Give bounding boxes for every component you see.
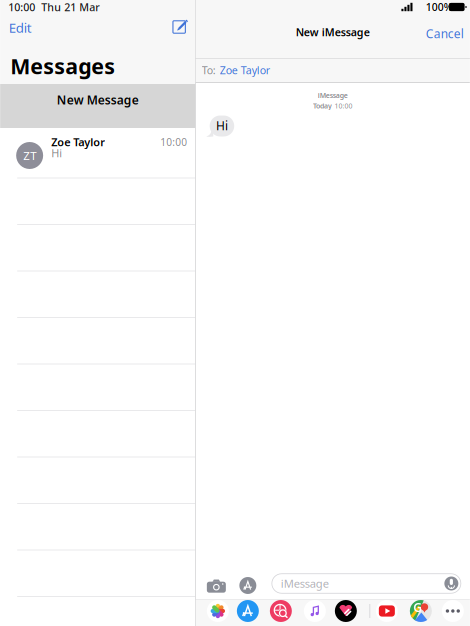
staticText: 10:00 [8,0,35,14]
button[interactable]: Camera [207,578,226,593]
button[interactable]: App Store [239,577,256,594]
staticText: Thu 21 Mar [41,0,100,14]
staticText: 10:00 [335,101,353,110]
button[interactable]: Maps [410,600,432,622]
button[interactable]: App Store [237,600,259,622]
staticText: New iMessage [296,25,370,39]
button[interactable]: New Message [167,10,196,39]
button[interactable]: Zoe Taylor [220,63,270,77]
button[interactable]: Music [304,600,326,622]
staticText: New Message [57,92,139,108]
staticText: G [413,599,422,615]
button[interactable]: ZT [0,128,195,178]
staticText: Edit [9,19,32,36]
button[interactable]: New Message [0,84,195,128]
button[interactable]: Edit [3,14,38,41]
staticText: 100% [426,0,453,14]
button[interactable]: YouTube [376,600,398,622]
button[interactable]: More [442,600,464,622]
button[interactable]: Images [270,600,292,622]
staticText: Zoe Taylor [51,135,105,149]
staticText: Cancel [426,25,464,41]
staticText: iMessage [281,576,329,591]
staticText: Zoe Taylor [220,63,270,77]
staticText: Hi [51,146,62,160]
button[interactable]: Photos [207,600,229,622]
staticText: Messages [10,52,115,80]
staticText: 10:00 [160,135,187,149]
button[interactable]: Cancel [422,20,468,46]
staticText: Today [313,101,332,110]
staticText: iMessage [318,91,348,100]
staticText: Hi [216,118,228,134]
staticText: ZT [23,148,36,163]
button[interactable]: Fitness [335,600,357,622]
staticText: To: [202,63,216,77]
